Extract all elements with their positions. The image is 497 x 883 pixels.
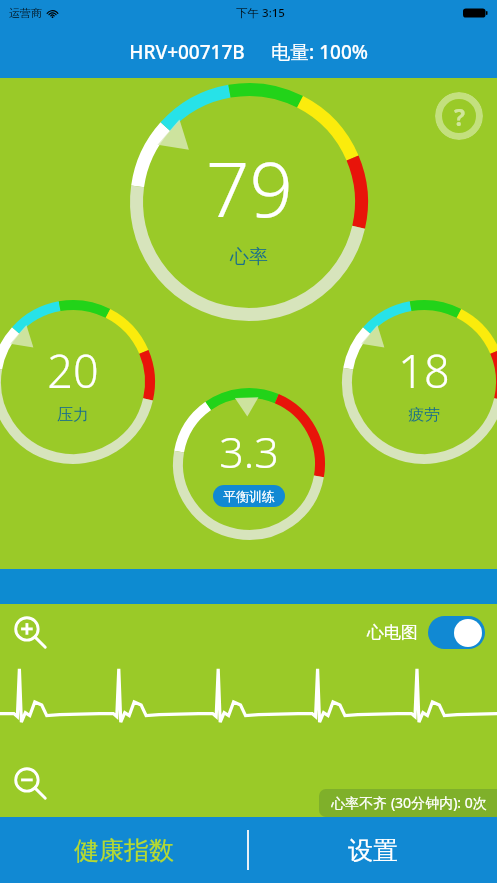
staticText: 79 xyxy=(206,136,293,240)
button[interactable]: Help xyxy=(435,92,483,140)
button[interactable]: 心电图 xyxy=(367,616,485,649)
staticText: 设置 xyxy=(348,835,398,866)
staticText: ? xyxy=(454,101,465,132)
staticText: 3.3 xyxy=(219,422,279,481)
staticText: 下午 3:15 xyxy=(236,5,285,21)
button[interactable]: Zoom out xyxy=(8,761,54,807)
button[interactable]: Zoom in xyxy=(8,610,54,656)
staticText: 平衡训练 xyxy=(223,488,275,504)
staticText: HRV+00717B xyxy=(129,39,245,65)
staticText: 电量: 100% xyxy=(271,39,368,65)
staticText: 心电图 xyxy=(367,622,418,643)
button[interactable]: 平衡训练 xyxy=(213,485,285,507)
staticText: 压力 xyxy=(57,405,89,425)
staticText: 心率 xyxy=(230,245,268,269)
staticText: 健康指数 xyxy=(74,835,174,866)
staticText: 疲劳 xyxy=(408,405,440,425)
button[interactable]: 心率不齐 (30分钟内): 0次 xyxy=(319,789,497,817)
button[interactable]: 设置 xyxy=(249,817,497,883)
staticText: 运营商 xyxy=(9,6,42,20)
staticText: 18 xyxy=(398,340,450,401)
staticText: 心率不齐 (30分钟内): 0次 xyxy=(331,793,487,812)
button[interactable]: 健康指数 xyxy=(0,817,247,883)
staticText: 20 xyxy=(47,340,99,401)
